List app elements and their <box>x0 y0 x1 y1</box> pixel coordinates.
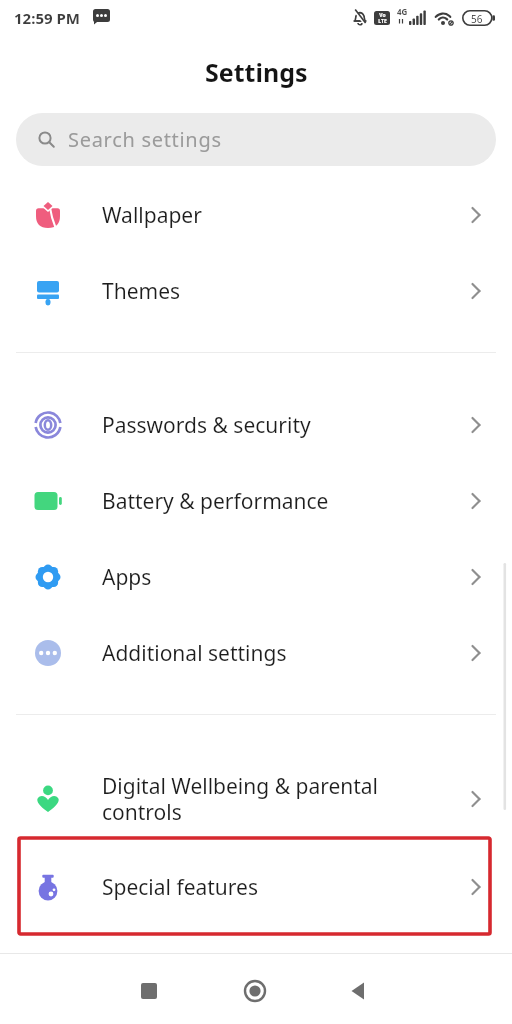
staticText: Additional settings <box>102 639 470 668</box>
staticText: Settings <box>205 55 308 89</box>
button[interactable] <box>350 982 368 1000</box>
staticText: Apps <box>102 563 470 592</box>
staticText: Digital Wellbeing & parental controls <box>102 772 470 827</box>
button[interactable]: Digital Wellbeing & parental controls <box>0 749 512 849</box>
staticText: Battery & performance <box>102 487 470 516</box>
button[interactable]: Special features <box>0 849 512 925</box>
button[interactable]: Wallpaper <box>0 177 512 253</box>
button[interactable]: Themes <box>0 253 512 329</box>
staticText: 56 <box>471 12 483 26</box>
staticText: Special features <box>102 873 470 902</box>
button[interactable]: Passwords & security <box>0 387 512 463</box>
staticText: Passwords & security <box>102 411 470 440</box>
button[interactable] <box>141 983 157 999</box>
staticText: 12:59 PM <box>14 8 80 28</box>
button[interactable]: Apps <box>0 539 512 615</box>
button[interactable] <box>243 979 267 1003</box>
button[interactable]: Additional settings <box>0 615 512 691</box>
staticText: 4G <box>397 6 408 17</box>
button[interactable]: Battery & performance <box>0 463 512 539</box>
staticText: Themes <box>102 277 470 306</box>
staticText: Search settings <box>68 126 222 153</box>
staticText: Vo LTE <box>378 12 387 25</box>
staticText: Wallpaper <box>102 201 470 230</box>
button[interactable]: Search settings <box>16 113 496 166</box>
